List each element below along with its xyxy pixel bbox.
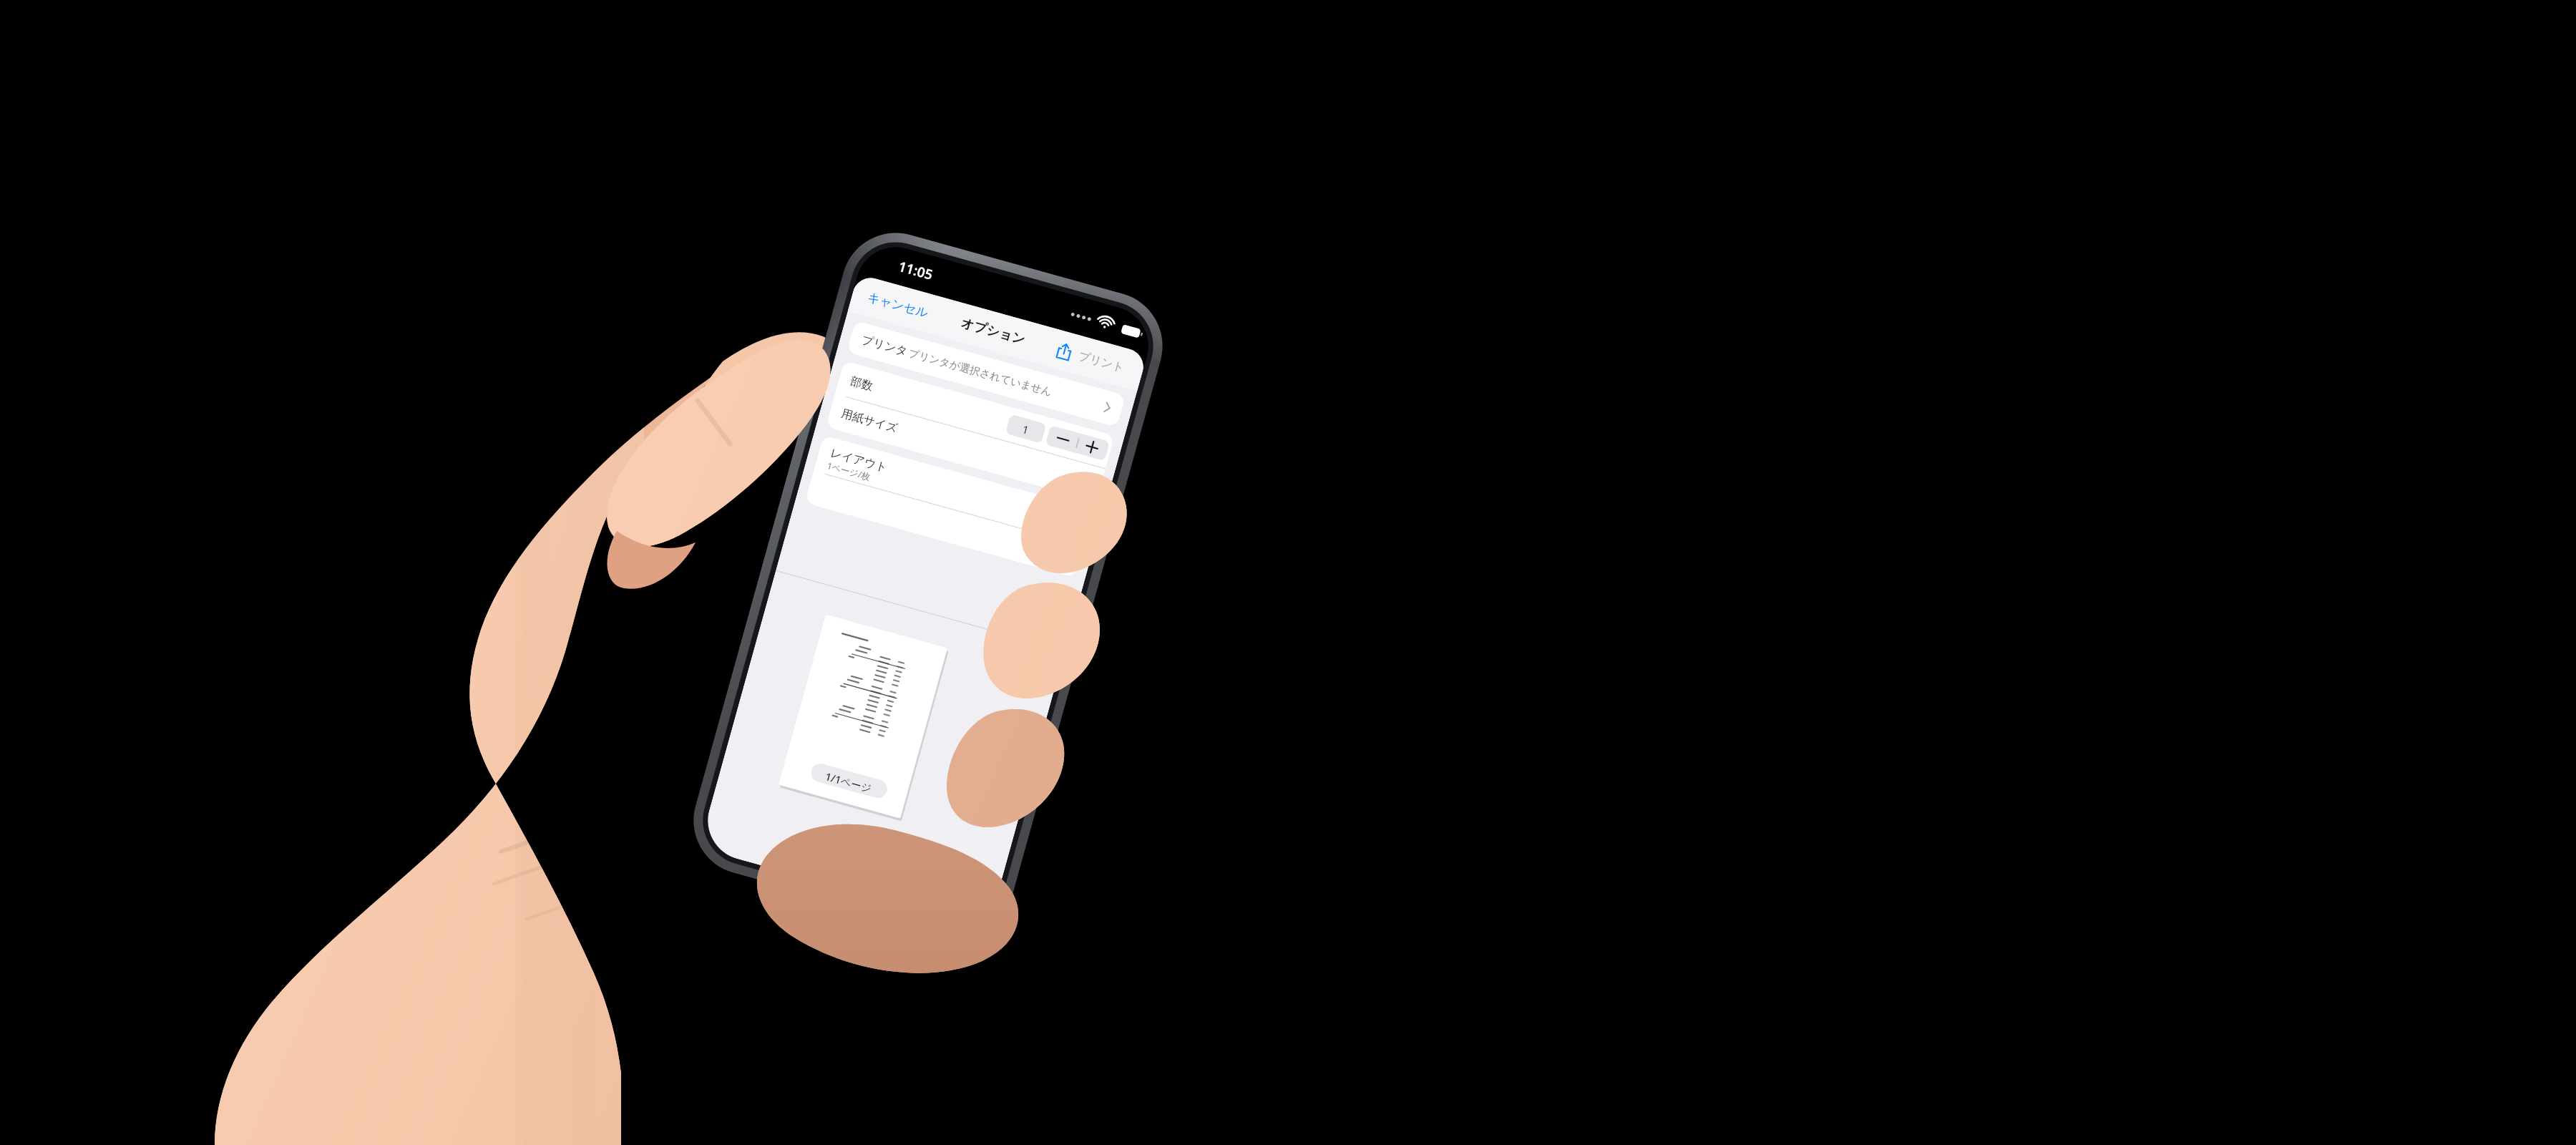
button[interactable]: Hand holding phone showing print options	[0, 0, 2576, 1145]
